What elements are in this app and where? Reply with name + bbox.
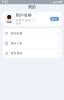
staticText: 我的 — [28, 4, 36, 9]
staticText: 我的收藏 — [10, 32, 22, 35]
button[interactable]: 我的订单 — [2, 38, 61, 48]
staticText: 9:41 — [1, 0, 8, 4]
staticText: 用户名称 — [16, 13, 32, 17]
button[interactable]: 用户名称 — [2, 12, 61, 26]
button[interactable]: 我的收藏 — [2, 28, 61, 38]
staticText: 编辑 — [52, 17, 58, 21]
staticText: 我的订单 — [10, 42, 22, 45]
button[interactable]: 消息通知 — [2, 48, 61, 58]
staticText: 消息通知 — [10, 52, 22, 55]
staticText: 查看并编辑个人资料 — [16, 19, 37, 25]
